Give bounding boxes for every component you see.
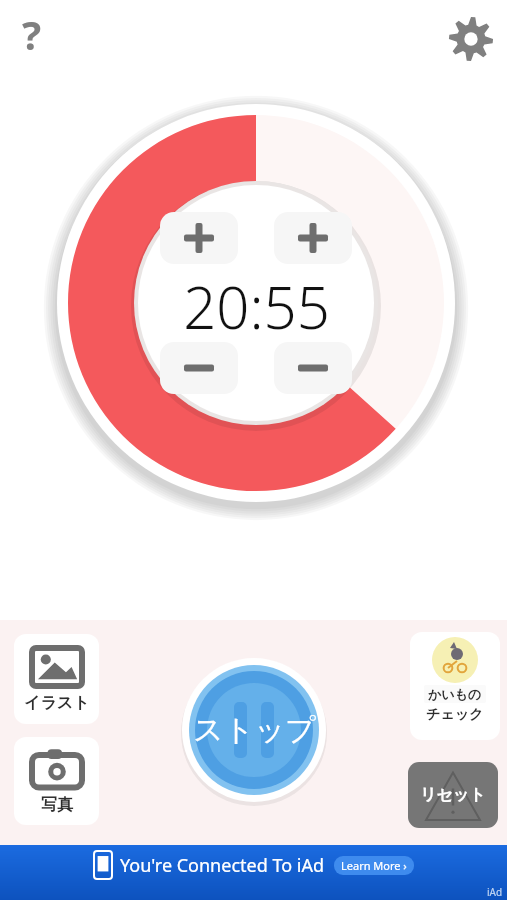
staticText: 写真	[41, 795, 73, 815]
staticText: 20:55	[183, 267, 330, 346]
button[interactable]: Shopping check	[410, 632, 500, 740]
staticText: かいもの	[428, 686, 482, 702]
button[interactable]: Learn More ›	[341, 858, 407, 873]
button[interactable]: Settings	[442, 10, 500, 68]
staticText: ストップ	[193, 711, 316, 749]
staticText: iAd	[487, 885, 503, 899]
button[interactable]: Help	[4, 6, 60, 62]
button[interactable]: Increase minutes	[160, 212, 238, 264]
button[interactable]: Photo	[14, 737, 99, 825]
staticText: リセット	[420, 785, 486, 805]
staticText: チェック	[426, 706, 484, 724]
button[interactable]: ストップ	[181, 657, 327, 803]
button[interactable]: Timer dial	[40, 80, 472, 530]
staticText: ?	[22, 7, 42, 61]
button[interactable]: リセット	[408, 762, 498, 828]
button[interactable]: Decrease minutes	[160, 342, 238, 394]
button[interactable]: Illustration	[14, 634, 99, 724]
staticText: You're Connected To iAd	[120, 853, 324, 878]
staticText: Learn More ›	[341, 858, 407, 873]
staticText: イラスト	[24, 693, 90, 713]
button[interactable]: Increase seconds	[274, 212, 352, 264]
button[interactable]: You're Connected To iAd	[0, 845, 507, 900]
button[interactable]: Decrease seconds	[274, 342, 352, 394]
